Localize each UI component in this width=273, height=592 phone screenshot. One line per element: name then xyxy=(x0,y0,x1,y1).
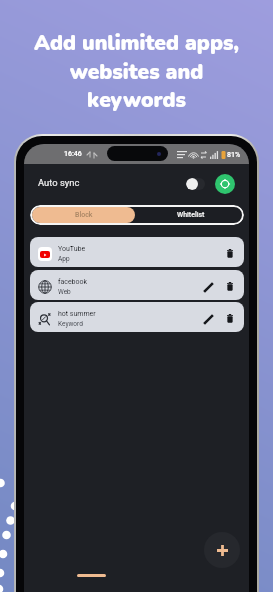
staticText: Add unlimited apps, websites and keyword… xyxy=(34,29,239,115)
button[interactable]: YouTube xyxy=(30,237,244,267)
staticText: Whitelist xyxy=(177,211,205,219)
button[interactable]: Whitelist xyxy=(137,205,244,225)
button[interactable]: Auto sync toggle xyxy=(186,178,205,190)
staticText: 16:46 xyxy=(64,150,82,158)
staticText: Web xyxy=(58,288,71,296)
button[interactable]: Edit xyxy=(201,312,215,326)
button[interactable]: facebook xyxy=(30,270,244,300)
button[interactable]: Delete xyxy=(223,312,236,325)
staticText: facebook xyxy=(58,278,88,286)
button[interactable]: Sync now xyxy=(215,174,235,194)
button[interactable]: hot summer xyxy=(30,302,244,332)
button[interactable]: Edit xyxy=(201,280,215,294)
staticText: 81% xyxy=(227,151,241,159)
staticText: hot summer xyxy=(58,310,96,318)
staticText: Block xyxy=(75,211,93,219)
button[interactable]: Delete xyxy=(223,247,236,260)
button[interactable]: Delete xyxy=(223,280,236,293)
staticText: App xyxy=(58,255,70,263)
button[interactable]: Add item xyxy=(204,532,240,568)
staticText: YouTube xyxy=(58,245,86,253)
staticText: Keyword xyxy=(58,320,83,328)
button[interactable]: Block xyxy=(32,207,135,223)
staticText: Auto sync xyxy=(38,177,80,188)
